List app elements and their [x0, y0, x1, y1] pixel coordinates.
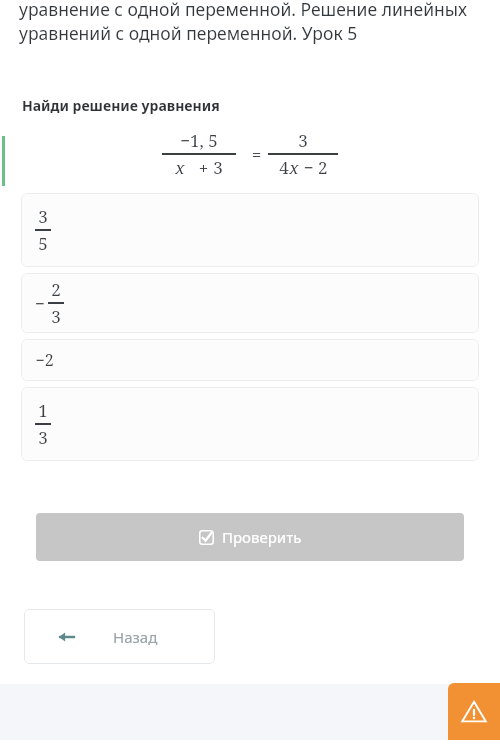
- staticText: =: [238, 143, 266, 166]
- button[interactable]: Проверить: [36, 513, 464, 561]
- staticText: Назад: [113, 627, 158, 647]
- staticText: 3: [213, 156, 223, 179]
- button[interactable]: −: [21, 273, 479, 333]
- staticText: 3: [298, 129, 308, 152]
- staticText: −1, 5: [180, 129, 218, 152]
- staticText: 3: [38, 426, 48, 449]
- staticText: +: [185, 156, 213, 179]
- staticText: 5: [38, 232, 48, 255]
- staticText: Найди решение уравнения: [22, 96, 220, 115]
- button[interactable]: 1: [21, 387, 479, 461]
- button[interactable]: 3: [21, 193, 479, 267]
- staticText: −: [35, 292, 45, 315]
- staticText: − 2: [299, 156, 328, 179]
- staticText: 4: [279, 156, 289, 179]
- staticText: 3: [38, 205, 48, 228]
- button[interactable]: Report a problem: [448, 683, 500, 740]
- staticText: x: [175, 156, 185, 179]
- staticText: Проверить: [222, 527, 302, 547]
- staticText: −2: [35, 349, 54, 371]
- staticText: 3: [51, 305, 61, 328]
- button[interactable]: Назад: [24, 609, 215, 664]
- staticText: 1: [38, 399, 48, 422]
- staticText: 2: [51, 278, 61, 301]
- staticText: уравнение с одной переменной. Решение ли…: [19, 0, 490, 45]
- staticText: x: [289, 156, 299, 179]
- button[interactable]: −2: [21, 339, 479, 381]
